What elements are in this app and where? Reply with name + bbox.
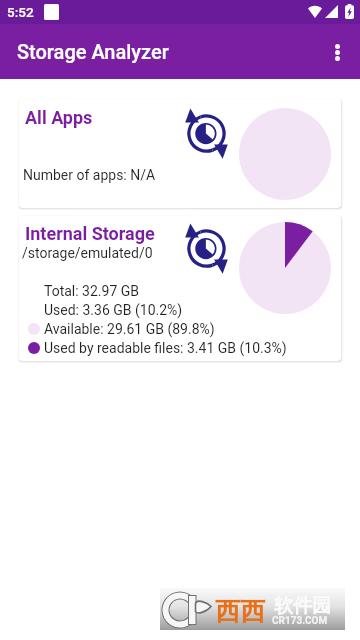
button[interactable]: All Apps — [19, 99, 341, 208]
staticText: Used: 3.36 GB (10.2%) — [44, 302, 183, 318]
staticText: CR173.COM — [272, 615, 328, 627]
staticText: Storage Analyzer — [17, 40, 169, 63]
staticText: Available: 29.61 GB (89.8%) — [44, 321, 215, 337]
button[interactable]: Internal Storage — [19, 216, 341, 361]
staticText: 软件园 — [274, 594, 331, 618]
button[interactable]: Refresh — [183, 222, 230, 275]
staticText: 5:52 — [7, 4, 34, 20]
staticText: Number of apps: N/A — [23, 167, 156, 183]
staticText: 西西 — [215, 596, 265, 627]
staticText: All Apps — [25, 107, 93, 128]
button[interactable]: Refresh — [183, 107, 230, 160]
staticText: Total: 32.97 GB — [44, 283, 140, 299]
staticText: Used by readable files: 3.41 GB (10.3%) — [44, 340, 287, 356]
button[interactable]: More options — [314, 29, 360, 75]
staticText: /storage/emulated/0 — [22, 245, 153, 261]
staticText: Internal Storage — [25, 223, 155, 244]
